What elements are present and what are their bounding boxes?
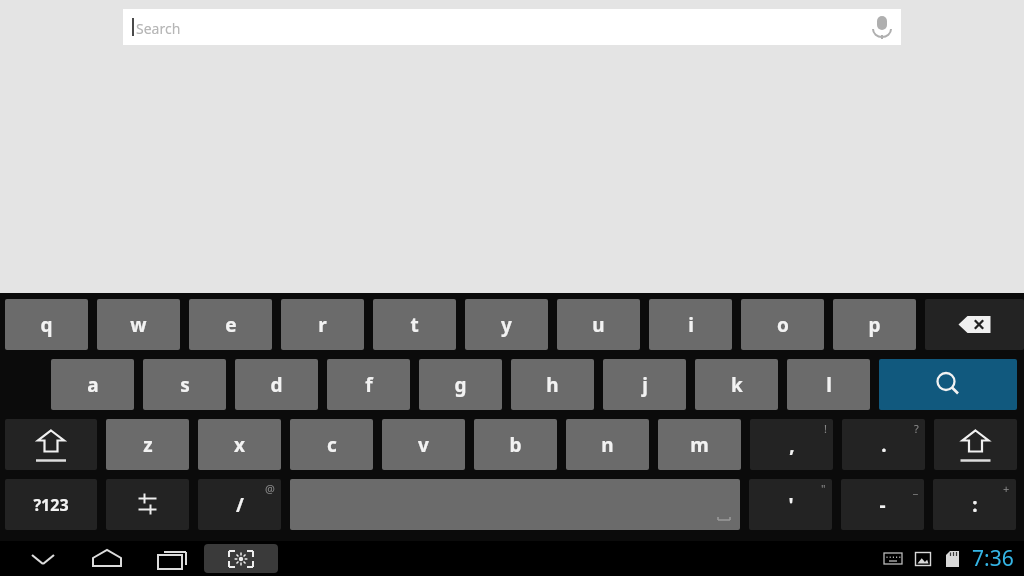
staticText: /: [236, 492, 244, 518]
staticText: !: [824, 421, 827, 436]
staticText: e: [225, 312, 237, 338]
button[interactable]: a: [51, 359, 134, 410]
staticText: p: [868, 312, 881, 338]
button[interactable]: g: [419, 359, 502, 410]
button[interactable]: j: [603, 359, 686, 410]
staticText: g: [454, 372, 467, 398]
button[interactable]: i: [649, 299, 732, 350]
button[interactable]: Hide keyboard: [12, 541, 74, 576]
staticText: l: [826, 372, 832, 398]
staticText: n: [601, 432, 614, 458]
staticText: ": [821, 481, 826, 496]
button[interactable]: c: [290, 419, 373, 470]
staticText: ,: [789, 432, 795, 458]
staticText: m: [690, 432, 709, 458]
button[interactable]: u: [557, 299, 640, 350]
staticText: -: [879, 492, 886, 518]
button[interactable]: v: [382, 419, 465, 470]
staticText: r: [318, 312, 327, 338]
button[interactable]: Backspace: [925, 299, 1024, 350]
button[interactable]: n: [566, 419, 649, 470]
button[interactable]: Shift: [934, 419, 1017, 470]
staticText: f: [365, 372, 373, 398]
staticText: b: [509, 432, 522, 458]
staticText: a: [87, 372, 99, 398]
button[interactable]: Keyboard active: [878, 541, 908, 576]
button[interactable]: ,: [750, 419, 833, 470]
button[interactable]: t: [373, 299, 456, 350]
button[interactable]: Shift: [5, 419, 97, 470]
staticText: .: [881, 432, 887, 458]
staticText: z: [143, 432, 153, 458]
button[interactable]: Input settings: [106, 479, 189, 530]
button[interactable]: :: [933, 479, 1016, 530]
button[interactable]: Recent apps: [140, 541, 202, 576]
button[interactable]: Screenshot captured: [908, 541, 938, 576]
staticText: c: [327, 432, 337, 458]
staticText: ?123: [33, 494, 69, 516]
staticText: d: [270, 372, 283, 398]
staticText: +: [1003, 481, 1010, 496]
staticText: :: [972, 492, 978, 518]
button[interactable]: SD card: [938, 541, 966, 576]
button[interactable]: .: [842, 419, 925, 470]
staticText: ?: [914, 421, 919, 436]
button[interactable]: b: [474, 419, 557, 470]
staticText: i: [688, 312, 694, 338]
button[interactable]: Search: [879, 359, 1017, 410]
staticText: _: [913, 481, 918, 496]
staticText: t: [410, 312, 419, 338]
staticText: ': [788, 492, 794, 518]
staticText: h: [546, 372, 559, 398]
button[interactable]: Voice search: [863, 9, 901, 45]
button[interactable]: Search: [123, 9, 901, 45]
staticText: s: [180, 372, 190, 398]
button[interactable]: l: [787, 359, 870, 410]
button[interactable]: -: [841, 479, 924, 530]
staticText: u: [592, 312, 605, 338]
staticText: q: [40, 312, 53, 338]
button[interactable]: r: [281, 299, 364, 350]
button[interactable]: w: [97, 299, 180, 350]
button[interactable]: Screenshot: [204, 544, 278, 573]
button[interactable]: /: [198, 479, 281, 530]
button[interactable]: z: [106, 419, 189, 470]
staticText: v: [418, 432, 429, 458]
staticText: k: [731, 372, 743, 398]
button[interactable]: e: [189, 299, 272, 350]
button[interactable]: m: [658, 419, 741, 470]
button[interactable]: s: [143, 359, 226, 410]
button[interactable]: ?123: [5, 479, 97, 530]
staticText: x: [234, 432, 245, 458]
button[interactable]: y: [465, 299, 548, 350]
button[interactable]: o: [741, 299, 824, 350]
staticText: j: [642, 372, 648, 398]
staticText: o: [777, 312, 789, 338]
staticText: w: [130, 312, 147, 338]
button[interactable]: h: [511, 359, 594, 410]
button[interactable]: p: [833, 299, 916, 350]
button[interactable]: x: [198, 419, 281, 470]
staticText: Search: [136, 19, 181, 38]
button[interactable]: ': [749, 479, 832, 530]
button[interactable]: q: [5, 299, 88, 350]
staticText: @: [265, 481, 275, 496]
button[interactable]: d: [235, 359, 318, 410]
staticText: y: [501, 312, 512, 338]
button[interactable]: Home: [76, 541, 138, 576]
staticText: 7:36: [972, 544, 1014, 573]
button[interactable]: f: [327, 359, 410, 410]
button[interactable]: k: [695, 359, 778, 410]
